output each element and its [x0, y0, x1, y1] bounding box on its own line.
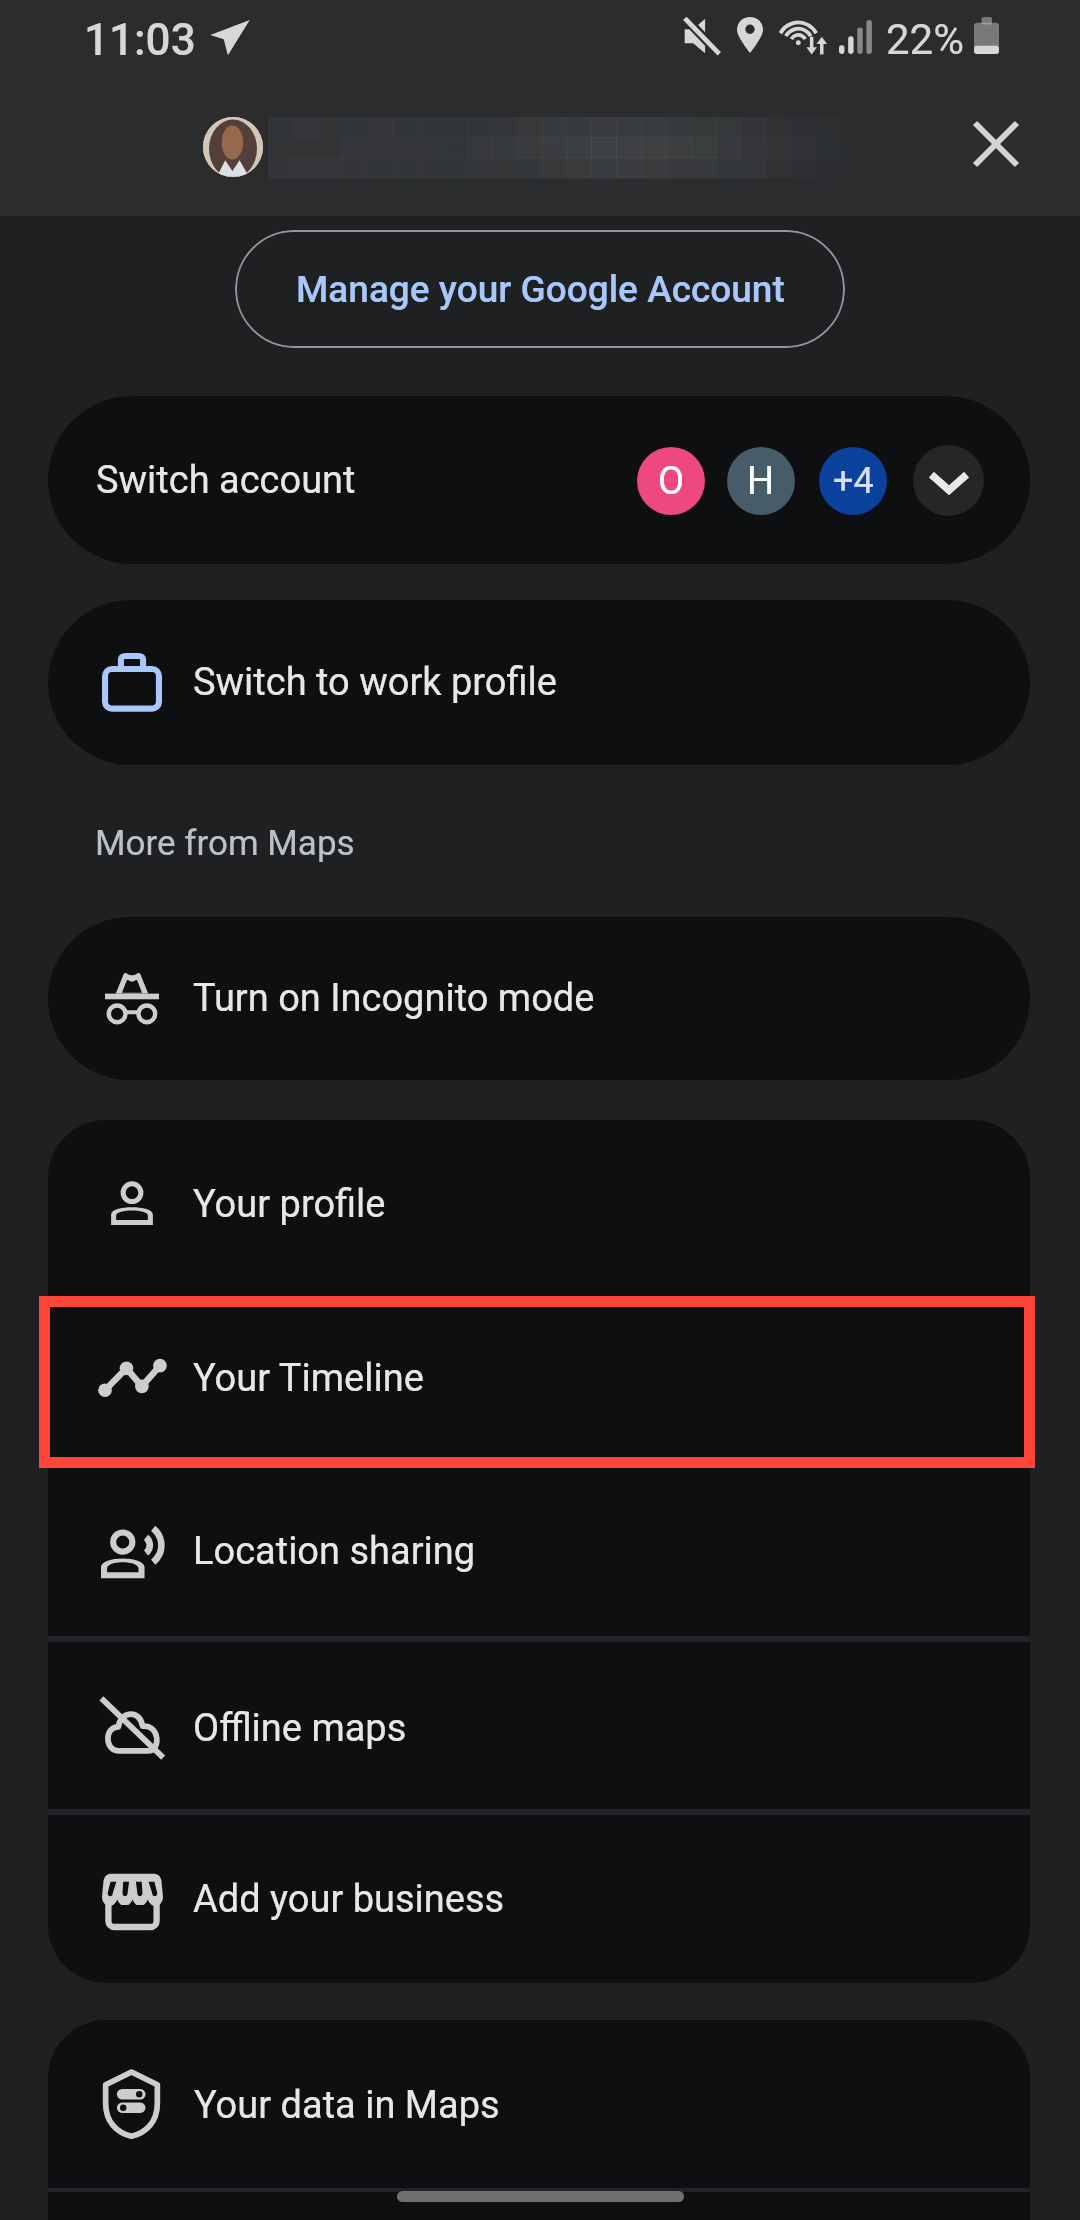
staticText: Add your business: [193, 1877, 505, 1922]
staticText: H: [747, 459, 775, 504]
button[interactable]: Turn on Incognito mode: [48, 917, 1030, 1080]
staticText: Offline maps: [193, 1706, 407, 1751]
staticText: Switch account: [96, 458, 356, 503]
button[interactable]: Manage your Google Account: [235, 230, 845, 348]
button[interactable]: H: [727, 447, 795, 515]
staticText: +4: [833, 460, 874, 502]
button[interactable]: Your Timeline: [48, 1296, 1030, 1468]
staticText: Turn on Incognito mode: [193, 976, 595, 1021]
staticText: 22%: [886, 15, 964, 64]
button[interactable]: Switch account: [48, 396, 1030, 564]
staticText: Your profile: [193, 1182, 386, 1227]
staticText: Your data in Maps: [194, 2083, 500, 2128]
staticText: Manage your Google Account: [296, 268, 785, 311]
button[interactable]: Expand account list: [913, 445, 984, 516]
button[interactable]: Account avatar: [203, 117, 263, 177]
button[interactable]: Close: [944, 92, 1048, 196]
button[interactable]: Your data in Maps: [48, 2020, 1030, 2220]
button[interactable]: Offline maps: [48, 1641, 1030, 1812]
staticText: Switch to work profile: [193, 660, 557, 705]
staticText: 11:03: [84, 14, 196, 66]
button[interactable]: Location sharing: [48, 1468, 1030, 1638]
button[interactable]: Add your business: [48, 1815, 1030, 1983]
button[interactable]: Your profile: [48, 1120, 1030, 1296]
button[interactable]: +4: [819, 447, 887, 515]
staticText: O: [658, 459, 685, 504]
staticText: Location sharing: [193, 1529, 476, 1574]
button[interactable]: O: [637, 447, 705, 515]
staticText: Your Timeline: [193, 1356, 424, 1401]
button[interactable]: Switch to work profile: [48, 600, 1030, 765]
staticText: More from Maps: [95, 823, 355, 864]
